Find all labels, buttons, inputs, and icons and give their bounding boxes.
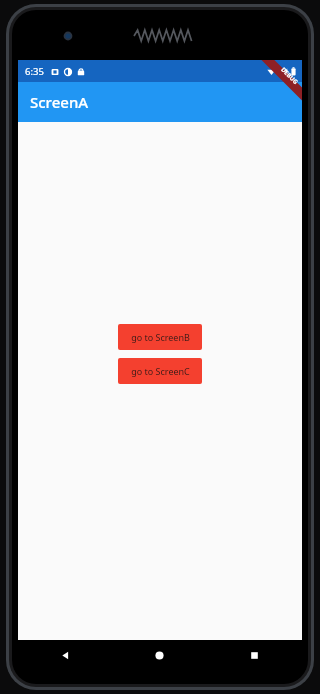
- staticText: DEBUG: [279, 66, 300, 86]
- staticText: go to ScreenB: [131, 331, 190, 343]
- button[interactable]: go to ScreenC: [118, 358, 202, 384]
- staticText: go to ScreenC: [131, 365, 190, 377]
- button[interactable]: Back: [18, 640, 112, 670]
- button[interactable]: go to ScreenB: [118, 324, 202, 350]
- staticText: 6:35: [25, 65, 44, 78]
- staticText: ScreenA: [30, 92, 89, 112]
- button[interactable]: Recent apps: [207, 640, 302, 670]
- button[interactable]: Home: [112, 640, 207, 670]
